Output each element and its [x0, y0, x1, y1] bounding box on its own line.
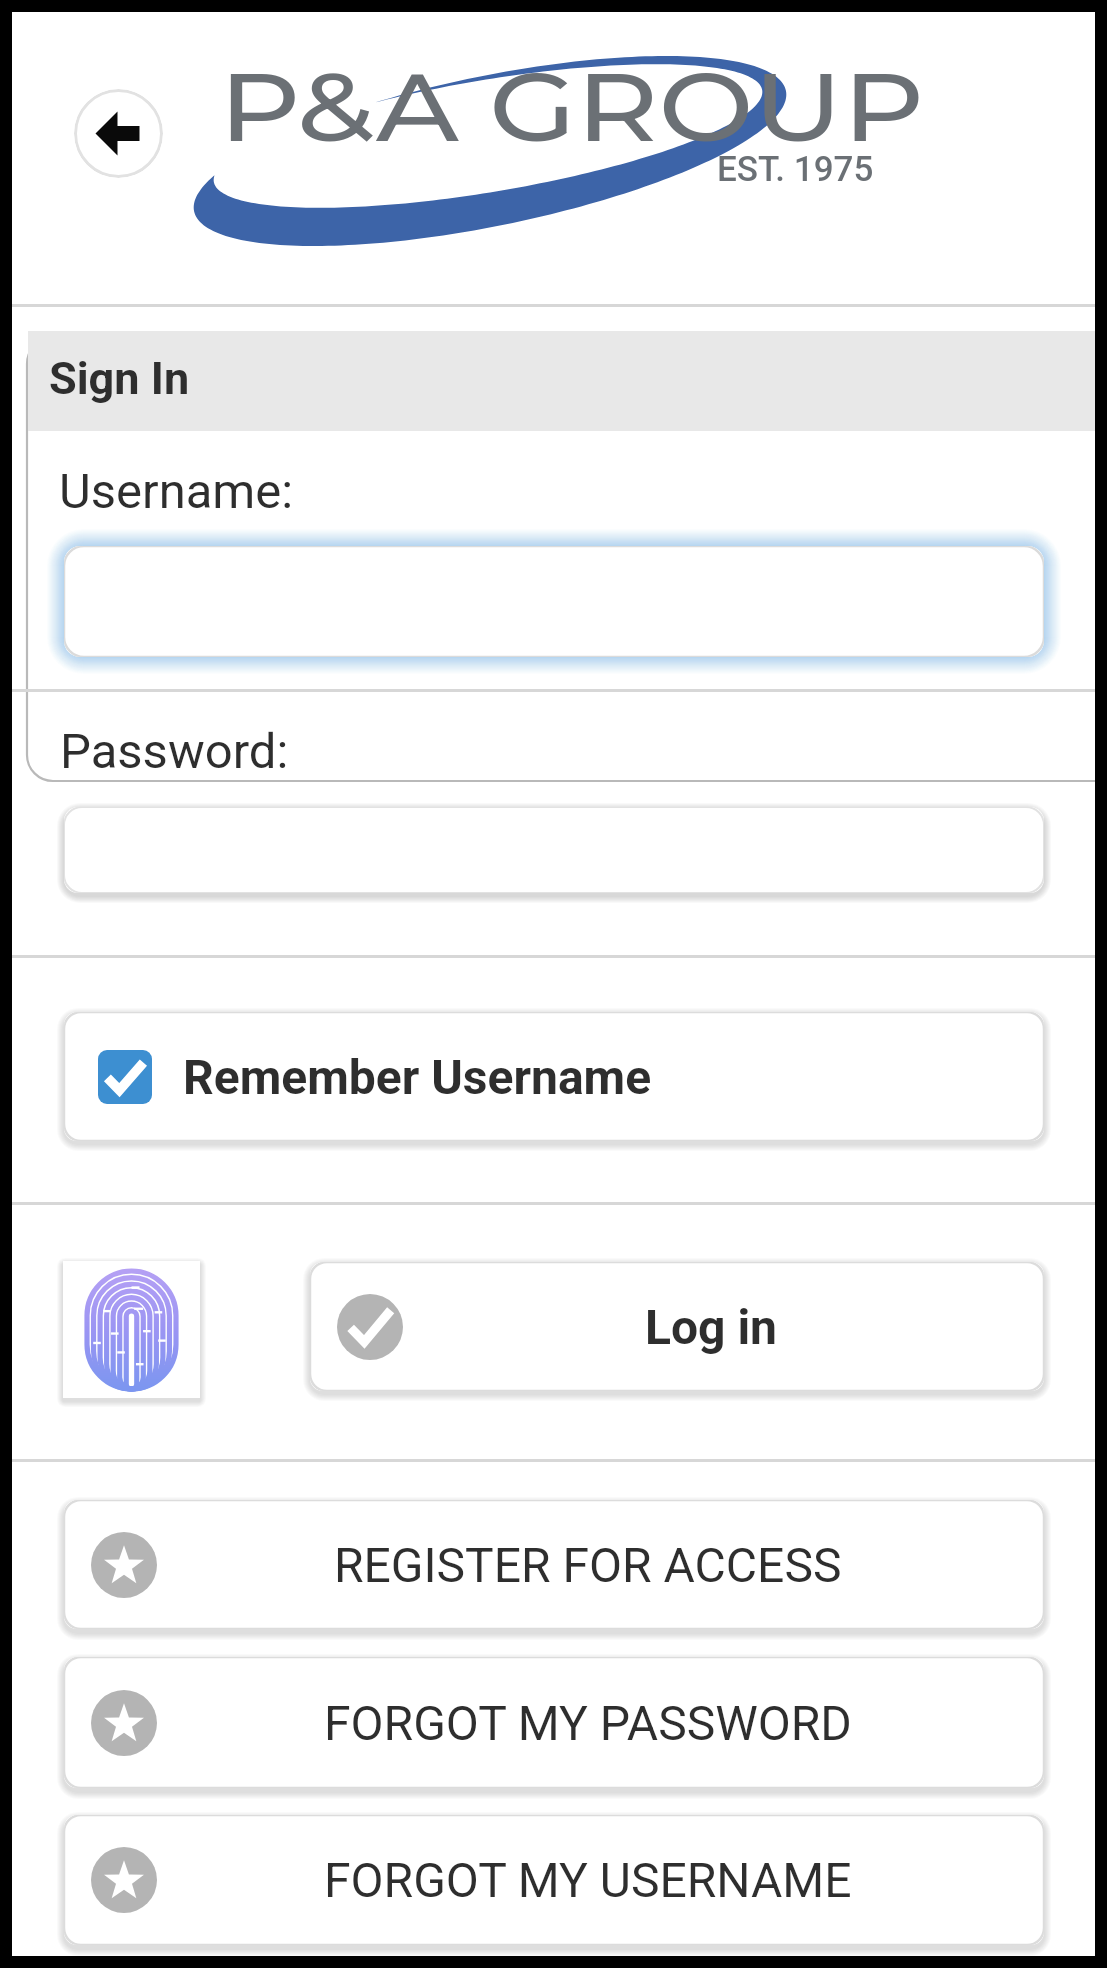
staticText: Remember Username — [183, 1049, 652, 1105]
button[interactable]: FORGOT MY PASSWORD — [64, 1657, 1044, 1788]
staticText: FORGOT MY USERNAME — [324, 1852, 852, 1908]
button[interactable]: Remember Username — [64, 1012, 1044, 1141]
staticText: REGISTER FOR ACCESS — [334, 1537, 842, 1593]
button[interactable] — [64, 546, 1044, 657]
button[interactable]: Back — [74, 89, 163, 178]
staticText: P&A GROUP — [219, 49, 925, 165]
staticText: FORGOT MY PASSWORD — [324, 1695, 852, 1751]
button[interactable]: FORGOT MY USERNAME — [64, 1815, 1044, 1945]
staticText: EST. 1975 — [717, 149, 874, 190]
button[interactable]: Sign in with fingerprint — [63, 1261, 200, 1398]
staticText: Sign In — [49, 352, 190, 405]
staticText: Username: — [59, 463, 294, 520]
button[interactable] — [64, 807, 1044, 893]
button[interactable]: Log in — [310, 1262, 1044, 1391]
button[interactable]: REGISTER FOR ACCESS — [64, 1500, 1044, 1629]
staticText: Password: — [60, 723, 289, 780]
staticText: Log in — [645, 1299, 778, 1355]
